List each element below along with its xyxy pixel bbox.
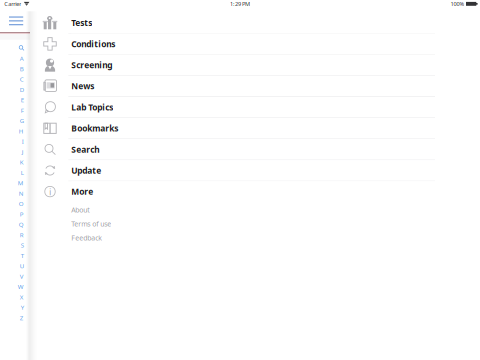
button[interactable]: Z [0, 313, 30, 323]
button[interactable]: Lab Topics [30, 97, 480, 117]
button[interactable]: i [30, 181, 480, 202]
staticText: Feedback [71, 233, 102, 242]
button[interactable]: Bookmarks [30, 118, 480, 138]
button[interactable]: A [0, 53, 30, 64]
button[interactable]: Search index [0, 43, 30, 53]
staticText: A [20, 54, 24, 63]
button[interactable]: Conditions [30, 34, 480, 54]
staticText: N [19, 189, 24, 197]
button[interactable]: T [0, 250, 30, 261]
staticText: Update [71, 165, 101, 176]
button[interactable]: Tests [30, 13, 480, 33]
button[interactable]: Feedback [30, 231, 480, 245]
staticText: Carrier [4, 0, 21, 8]
button[interactable]: F [0, 105, 30, 115]
staticText: R [20, 231, 24, 239]
button[interactable]: About [30, 203, 480, 217]
button[interactable]: P [0, 209, 30, 219]
button[interactable]: M [0, 178, 30, 188]
button[interactable]: C [0, 74, 30, 84]
button[interactable]: U [0, 261, 30, 271]
staticText: i [49, 185, 51, 198]
staticText: J [22, 148, 24, 156]
staticText: I [22, 137, 24, 146]
button[interactable]: Terms of use [30, 217, 480, 231]
button[interactable]: N [0, 188, 30, 198]
staticText: M [18, 179, 24, 187]
button[interactable]: D [0, 84, 30, 95]
staticText: H [19, 127, 24, 135]
staticText: E [21, 96, 24, 104]
button[interactable]: R [0, 230, 30, 240]
button[interactable]: I [0, 136, 30, 147]
staticText: Search [71, 144, 99, 155]
staticText: S [21, 241, 24, 249]
button[interactable]: S [0, 240, 30, 250]
staticText: K [20, 158, 24, 166]
button[interactable]: O [0, 198, 30, 209]
button[interactable]: H [0, 126, 30, 136]
button[interactable]: Update [30, 160, 480, 181]
staticText: Tests [71, 17, 92, 28]
button[interactable]: Menu [0, 11, 30, 32]
button[interactable]: B [0, 64, 30, 74]
staticText: L [21, 168, 24, 177]
staticText: Conditions [71, 38, 115, 50]
staticText: Y [21, 303, 24, 312]
staticText: Terms of use [71, 219, 111, 228]
button[interactable]: Search [30, 139, 480, 160]
staticText: T [21, 251, 24, 260]
staticText: About [71, 205, 90, 214]
staticText: 1:29 PM [230, 0, 250, 8]
staticText: Screening [71, 59, 112, 71]
staticText: W [18, 283, 24, 291]
staticText: U [20, 262, 24, 270]
staticText: D [20, 85, 24, 94]
button[interactable]: Screening [30, 55, 480, 75]
staticText: Q [19, 220, 24, 229]
staticText: X [20, 293, 24, 301]
staticText: G [20, 116, 24, 125]
staticText: O [19, 199, 24, 208]
staticText: 100% [450, 0, 464, 8]
staticText: More [71, 186, 93, 197]
staticText: B [20, 65, 24, 73]
staticText: P [20, 210, 24, 218]
staticText: Z [20, 314, 24, 322]
button[interactable]: W [0, 281, 30, 292]
button[interactable]: G [0, 115, 30, 126]
staticText: News [71, 80, 94, 92]
staticText: V [20, 272, 24, 281]
button[interactable]: V [0, 271, 30, 282]
staticText: Bookmarks [71, 123, 118, 134]
staticText: Lab Topics [71, 101, 113, 113]
button[interactable]: K [0, 157, 30, 167]
button[interactable]: Q [0, 219, 30, 230]
button[interactable]: J [0, 147, 30, 157]
button[interactable]: E [0, 95, 30, 105]
button[interactable]: News [30, 76, 480, 96]
staticText: C [20, 75, 24, 83]
button[interactable]: X [0, 292, 30, 302]
button[interactable]: Y [0, 302, 30, 313]
button[interactable]: L [0, 167, 30, 178]
staticText: F [21, 106, 24, 114]
